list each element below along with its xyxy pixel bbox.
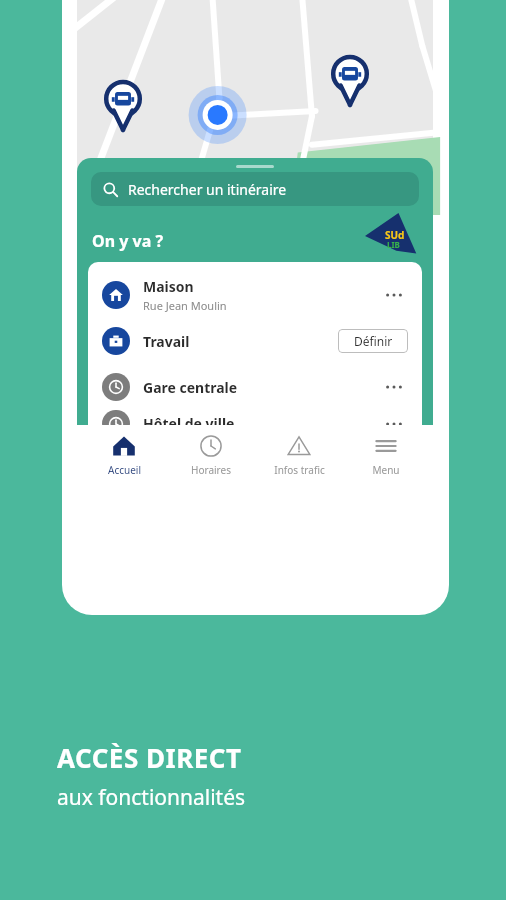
- staticText: Travail: [143, 332, 190, 351]
- button[interactable]: Infos trafic: [259, 425, 339, 485]
- staticText: aux fonctionnalités: [57, 783, 246, 812]
- staticText: Rue Jean Moulin: [143, 298, 227, 313]
- button[interactable]: Plus d'options: [380, 410, 408, 437]
- button[interactable]: Travail: [88, 318, 422, 364]
- staticText: Menu: [372, 463, 400, 477]
- staticText: Gare centrale: [143, 378, 238, 397]
- button[interactable]: Accueil: [84, 425, 164, 485]
- staticText: Hôtel de ville: [143, 414, 235, 433]
- button[interactable]: Plus d'options: [380, 281, 408, 309]
- staticText: Infos trafic: [274, 463, 325, 477]
- button[interactable]: Horaires: [171, 425, 251, 485]
- staticText: Rechercher un itinéraire: [128, 180, 287, 199]
- staticText: Accueil: [108, 463, 141, 477]
- staticText: Définir: [354, 333, 393, 349]
- button[interactable]: Maison: [88, 272, 422, 318]
- button[interactable]: Rechercher un itinéraire: [91, 172, 419, 206]
- staticText: Horaires: [191, 463, 231, 477]
- staticText: ACCÈS DIRECT: [57, 740, 242, 775]
- staticText: SUd: [385, 228, 405, 242]
- staticText: Maison: [143, 277, 194, 296]
- button[interactable]: Gare centrale: [88, 364, 422, 410]
- button[interactable]: Hôtel de ville: [88, 410, 422, 437]
- button[interactable]: Plus d'options: [380, 373, 408, 401]
- button[interactable]: Menu: [346, 425, 426, 485]
- button[interactable]: Définir: [338, 329, 408, 353]
- staticText: On y va ?: [92, 230, 164, 252]
- staticText: LIB: [387, 239, 400, 250]
